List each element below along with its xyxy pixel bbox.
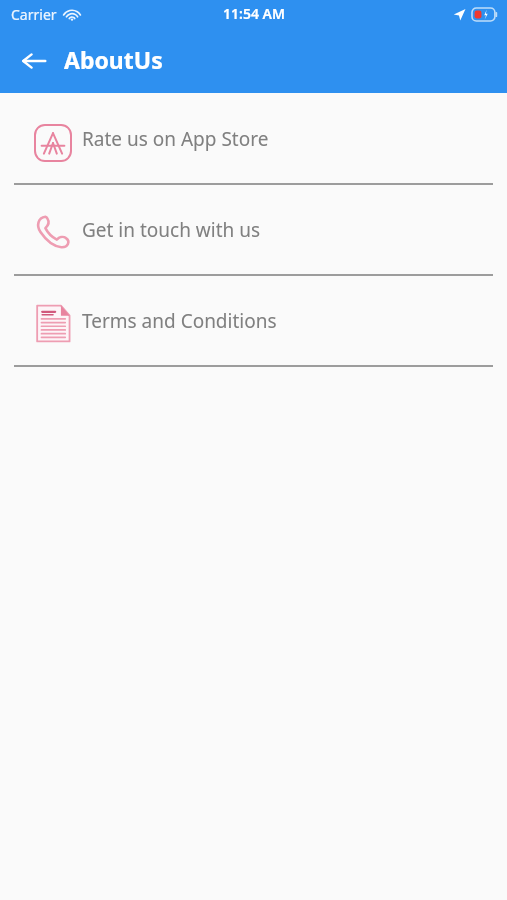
button[interactable]: Get in touch with us (0, 185, 507, 274)
staticText: AboutUs (64, 44, 163, 75)
button[interactable]: Terms and Conditions (0, 276, 507, 365)
staticText: Get in touch with us (82, 217, 261, 243)
staticText: Carrier (11, 5, 57, 24)
staticText: 11:54 AM (223, 4, 285, 23)
staticText: Rate us on App Store (82, 126, 269, 152)
button[interactable]: Back (14, 41, 54, 81)
button[interactable]: Rate us on App Store (0, 94, 507, 183)
staticText: Terms and Conditions (82, 308, 277, 334)
